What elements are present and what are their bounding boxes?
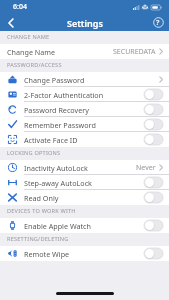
staticText: PASSWORD/ACCESS [7,61,62,69]
button[interactable]: Step-away AutoLock [0,175,169,190]
staticText: Change Name [7,47,56,57]
button[interactable]: Remote Wipe [0,246,169,261]
staticText: Never [136,163,156,173]
staticText: Remember Password [24,120,96,130]
button[interactable]: Inactivity AutoLock [0,160,169,175]
button[interactable]: Enable Apple Watch [0,218,169,233]
staticText: SECUREDATA [113,47,156,57]
staticText: 6:04 [13,2,27,12]
staticText: 2-Factor Authentication [24,90,104,100]
staticText: DEVICES TO WORK WITH [7,207,76,215]
button[interactable]: 2-Factor Authentication [0,87,169,102]
button[interactable]: Activate Face ID [0,132,169,147]
button[interactable]: Change Password [0,72,169,87]
staticText: LOCKING OPTIONS [7,149,61,157]
staticText: ? [156,18,160,28]
staticText: Inactivity AutoLock [24,163,88,173]
staticText: Activate Face ID [24,135,78,145]
button[interactable]: Back [0,14,22,31]
button[interactable]: Password Recovery [0,102,169,117]
button[interactable]: Remember Password [0,117,169,132]
staticText: CHANGE NAME [7,33,50,41]
staticText: Change Password [24,75,85,85]
staticText: Settings [67,17,103,29]
button[interactable]: Read Only [0,190,169,205]
staticText: RESETTING/DELETING [7,235,69,243]
button[interactable]: Change Name [0,44,169,59]
staticText: Enable Apple Watch [24,221,91,231]
button[interactable]: Help [147,14,169,31]
staticText: Read Only [24,193,59,203]
staticText: Remote Wipe [24,249,70,259]
staticText: Password Recovery [24,105,89,115]
staticText: Step-away AutoLock [24,178,92,188]
